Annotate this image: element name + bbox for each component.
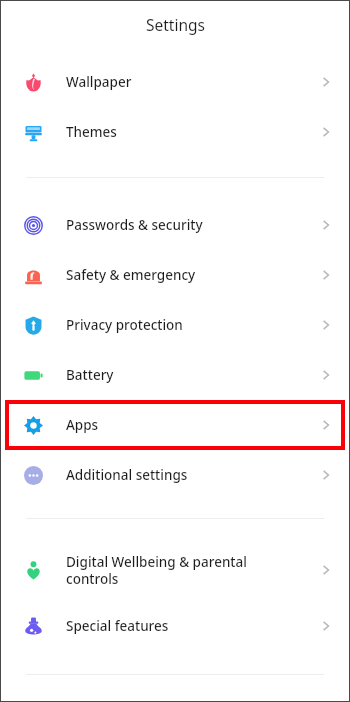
staticText: Additional settings (66, 466, 306, 484)
staticText: Wallpaper (66, 73, 306, 91)
button[interactable]: Themes (1, 107, 349, 157)
button[interactable]: Passwords & security (1, 200, 349, 250)
staticText: Special features (66, 617, 306, 635)
staticText: Safety & emergency (66, 266, 306, 284)
button[interactable]: Battery (1, 350, 349, 400)
button[interactable]: Additional settings (1, 450, 349, 500)
staticText: Battery (66, 366, 306, 384)
staticText: Passwords & security (66, 216, 306, 234)
staticText: Privacy protection (66, 316, 306, 334)
button[interactable]: Privacy protection (1, 300, 349, 350)
button[interactable]: Safety & emergency (1, 250, 349, 300)
button[interactable]: Apps (1, 400, 349, 450)
staticText: Settings (146, 14, 205, 35)
button[interactable]: Digital Wellbeing & parental controls (1, 541, 349, 599)
staticText: Themes (66, 123, 306, 141)
staticText: Apps (66, 416, 306, 434)
button[interactable]: Special features (1, 599, 349, 653)
button[interactable]: Wallpaper (1, 57, 349, 107)
staticText: Digital Wellbeing & parental controls (66, 553, 306, 588)
